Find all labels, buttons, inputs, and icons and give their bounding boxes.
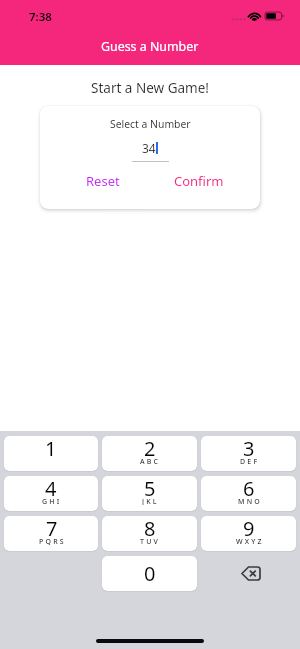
button[interactable]: Delete [201,556,296,591]
staticText: JKL [142,497,159,505]
button[interactable]: 4 [4,476,98,511]
staticText: 1 [45,436,57,462]
button[interactable]: 0 [102,556,197,591]
staticText: 4 [45,476,57,502]
button[interactable]: 9 [201,516,296,551]
staticText: 6 [243,476,255,502]
staticText: GHI [42,497,62,505]
staticText: Confirm [174,172,224,190]
staticText: Start a New Game! [0,79,300,97]
staticText: 9 [243,516,255,542]
staticText: 2 [144,436,156,462]
button[interactable]: 7 [4,516,98,551]
staticText: Reset [86,172,120,190]
staticText: ABC [140,457,161,465]
button[interactable]: Confirm [154,169,260,195]
staticText: 3 [243,436,255,462]
staticText: 5 [144,476,156,502]
staticText: WXYZ [236,537,264,545]
button[interactable]: 1 [4,436,98,471]
button[interactable]: 6 [201,476,296,511]
staticText: 7 [46,516,58,542]
staticText: 7:38 [29,9,52,25]
button[interactable]: Reset [40,169,140,195]
button[interactable]: 5 [102,476,197,511]
staticText: Select a Number [110,117,191,131]
button[interactable]: 8 [102,516,197,551]
staticText: TUV [140,537,161,545]
staticText: MNO [238,497,262,505]
button[interactable]: 3 [201,436,296,471]
staticText: 8 [144,516,156,542]
staticText: PQRS [39,537,66,545]
button[interactable]: 2 [102,436,197,471]
staticText: 34 [142,140,156,156]
staticText: DEF [240,457,260,465]
staticText: Guess a Number [101,38,199,55]
staticText: 0 [144,560,156,587]
